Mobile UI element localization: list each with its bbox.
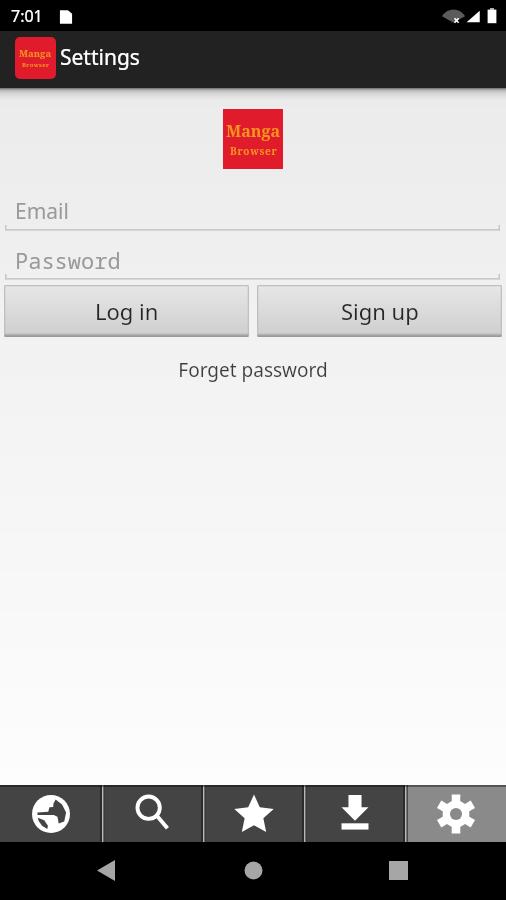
- button[interactable]: Sign up: [257, 285, 502, 337]
- button[interactable]: Email: [0, 190, 506, 230]
- staticText: Log in: [95, 296, 159, 326]
- button[interactable]: Search: [102, 785, 203, 842]
- button[interactable]: Downloads: [304, 785, 405, 842]
- button[interactable]: Log in: [4, 285, 249, 337]
- staticText: Browser: [22, 61, 50, 69]
- staticText: Email: [15, 197, 69, 226]
- staticText: Manga: [19, 47, 52, 60]
- staticText: Password: [15, 245, 121, 275]
- staticText: Sign up: [341, 296, 419, 326]
- staticText: 7:01: [11, 5, 43, 27]
- staticText: Settings: [60, 43, 140, 72]
- staticText: Browser: [230, 144, 278, 158]
- button[interactable]: Favorites: [203, 785, 304, 842]
- button[interactable]: Forget password: [0, 357, 506, 383]
- button[interactable]: Password: [0, 239, 506, 279]
- button[interactable]: Settings: [405, 785, 506, 842]
- staticText: Manga: [226, 120, 281, 142]
- button[interactable]: Browse: [0, 785, 102, 842]
